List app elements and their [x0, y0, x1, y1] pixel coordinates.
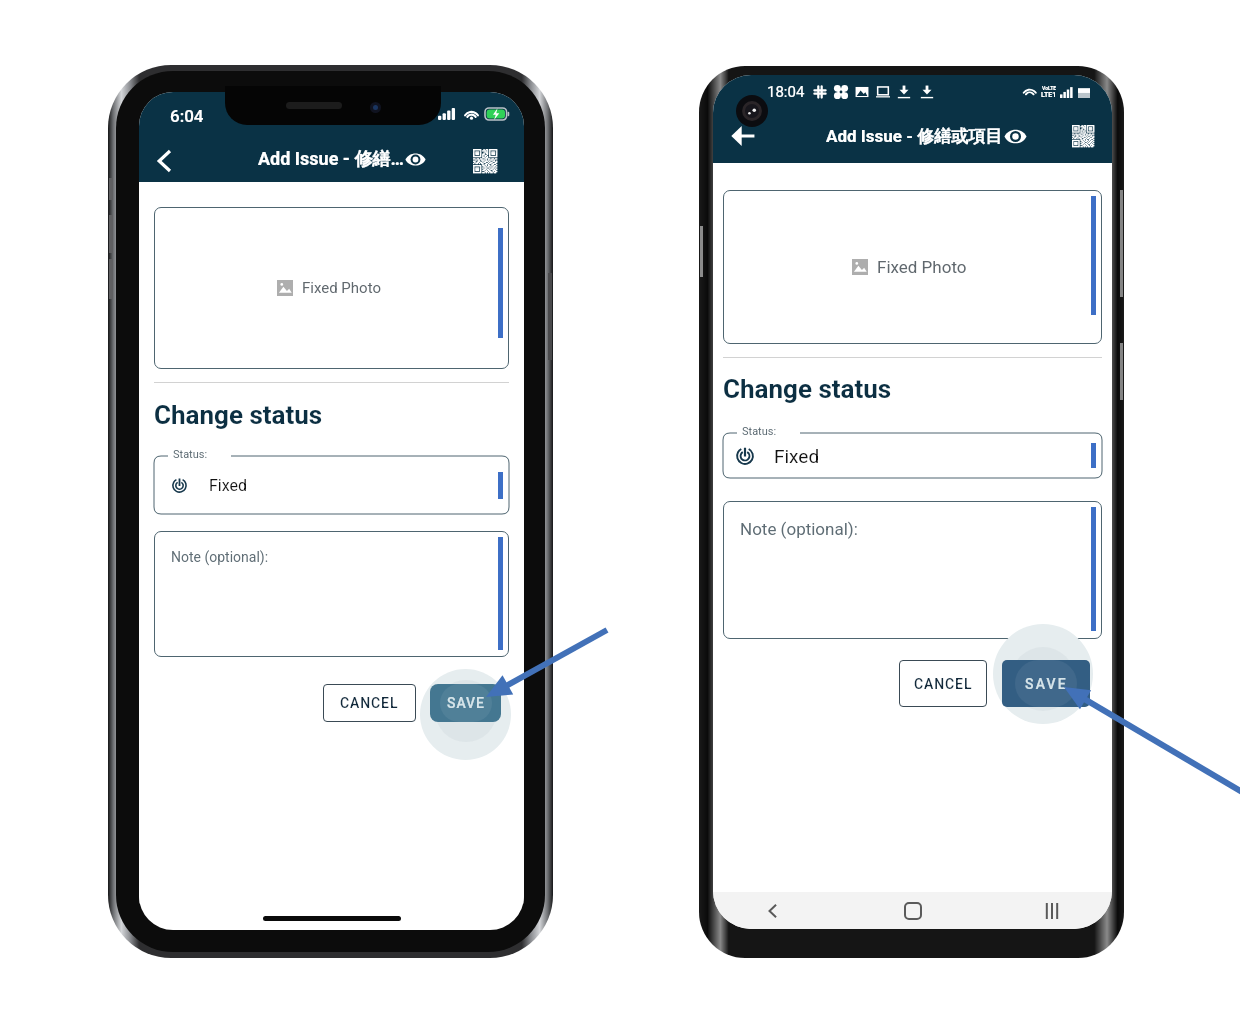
- staticText: SAVE: [447, 695, 485, 711]
- button[interactable]: Back: [721, 114, 765, 158]
- staticText: Status:: [173, 448, 208, 461]
- staticText: Fixed: [209, 476, 248, 495]
- button[interactable]: Scan QR code: [465, 141, 505, 181]
- staticText: 6:04: [170, 106, 204, 126]
- staticText: SAVE: [1025, 676, 1068, 692]
- staticText: Status:: [742, 425, 777, 438]
- staticText: Note (optional):: [171, 549, 269, 565]
- button[interactable]: Scan QR code: [1063, 116, 1103, 156]
- staticText: Change status: [154, 400, 323, 430]
- staticText: VoLTE: [1042, 85, 1057, 91]
- staticText: Note (optional):: [740, 519, 858, 539]
- staticText: LTE1: [1041, 91, 1057, 99]
- staticText: Add Issue - 修繕…: [258, 148, 404, 171]
- staticText: Change status: [723, 374, 892, 404]
- staticText: Add Issue - 修繕或項目: [826, 126, 1003, 147]
- button[interactable]: Back: [142, 139, 186, 183]
- staticText: Fixed: [774, 445, 820, 467]
- staticText: CANCEL: [914, 676, 973, 692]
- staticText: CANCEL: [340, 695, 399, 711]
- button[interactable]: CANCEL: [323, 684, 416, 722]
- button[interactable]: Home: [897, 895, 929, 927]
- button[interactable]: Recent apps: [1036, 895, 1068, 927]
- button[interactable]: CANCEL: [899, 660, 987, 707]
- staticText: 18:04: [767, 83, 805, 101]
- staticText: Fixed Photo: [302, 279, 381, 297]
- button[interactable]: SAVE: [430, 684, 501, 722]
- button[interactable]: Back: [757, 895, 789, 927]
- staticText: Fixed Photo: [877, 257, 967, 277]
- button[interactable]: SAVE: [1002, 660, 1090, 707]
